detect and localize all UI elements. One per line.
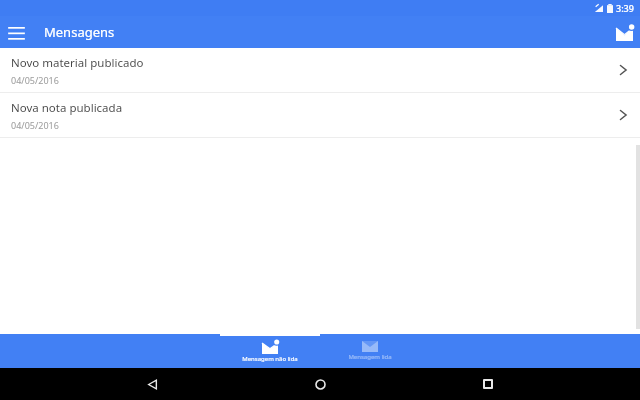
staticText: Mensagem não lida: [242, 355, 298, 363]
staticText: 04/05/2016: [11, 74, 59, 86]
button[interactable]: Mensagem lida: [320, 334, 420, 368]
button[interactable]: Novo material publicado: [0, 48, 640, 92]
staticText: Mensagens: [44, 23, 115, 41]
staticText: Novo material publicado: [11, 55, 144, 71]
button[interactable]: Open navigation drawer: [0, 16, 32, 48]
staticText: 3:39: [616, 2, 634, 14]
staticText: 04/05/2016: [11, 119, 59, 131]
button[interactable]: Home: [304, 368, 336, 400]
button[interactable]: Unread messages: [608, 16, 640, 48]
button[interactable]: Nova nota publicada: [0, 93, 640, 137]
button[interactable]: Recent apps: [472, 368, 504, 400]
staticText: Mensagem lida: [348, 353, 392, 361]
button[interactable]: Back: [136, 368, 168, 400]
button[interactable]: Mensagem não lida: [220, 334, 320, 368]
staticText: Nova nota publicada: [11, 100, 123, 116]
